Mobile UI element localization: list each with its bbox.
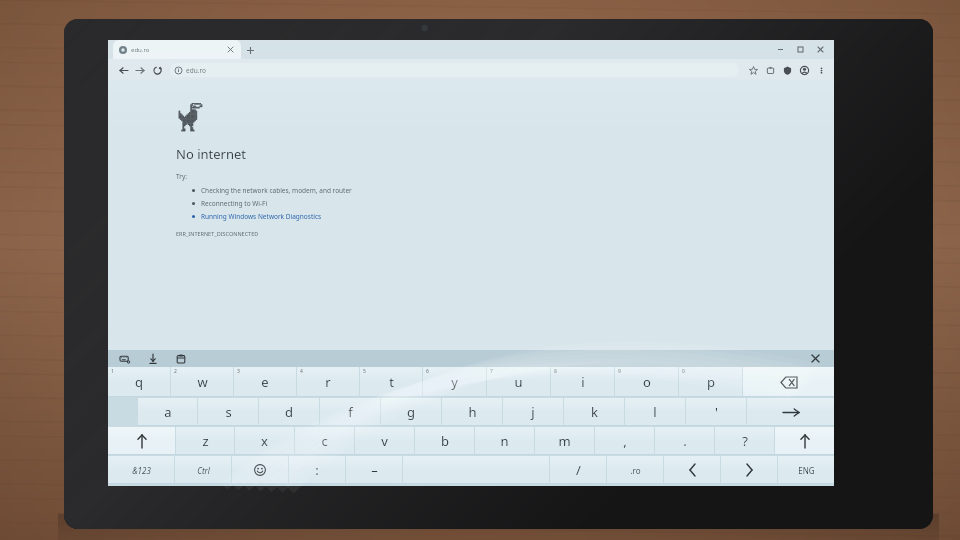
staticText: 0 [682,368,685,375]
button[interactable]: Right [721,456,777,484]
button[interactable]: / [550,456,606,484]
staticText: r [325,373,331,391]
button[interactable]: &123 [108,456,174,484]
staticText: edu.ro [186,66,206,75]
button[interactable]: Keyboard settings [117,351,132,366]
button[interactable]: d [259,398,319,426]
staticText: ERR_INTERNET_DISCONNECTED [176,230,259,237]
staticText: 1 [111,368,114,375]
staticText: / [576,461,581,479]
button[interactable]: Bookmark [745,62,762,79]
button[interactable]: New tab [241,41,259,59]
staticText: z [202,432,209,450]
button[interactable]: Left [664,456,720,484]
button[interactable]: a [138,398,197,426]
staticText: y [451,373,458,391]
button[interactable]: Minimize [770,40,790,59]
staticText: ? [742,432,748,450]
button[interactable]: Running Windows Network Diagnostics [176,212,322,221]
staticText: 9 [618,368,621,375]
button[interactable]: Clipboard [173,351,188,366]
button[interactable]: j [503,398,563,426]
button[interactable]: z [176,427,234,455]
button[interactable]: edu.ro [113,40,241,59]
button[interactable]: ? [715,427,774,455]
button[interactable]: 6 [423,367,486,397]
staticText: n [500,432,509,450]
button[interactable]: Close tab [226,45,235,54]
staticText: 6 [426,368,429,375]
staticText: d [285,403,293,421]
button[interactable]: 5 [360,367,422,397]
staticText: &123 [132,465,151,476]
staticText: : [315,461,319,479]
button[interactable]: Extensions [762,62,779,79]
staticText: , [623,432,627,450]
button[interactable]: h [442,398,502,426]
button[interactable]: Backspace [743,367,834,397]
staticText: Reconnecting to Wi-Fi [201,199,268,208]
button[interactable]: : [289,456,345,484]
button[interactable]: , [595,427,654,455]
button[interactable]: Close keyboard [807,350,824,367]
button[interactable]: k [564,398,624,426]
button[interactable]: Security [779,62,796,79]
button[interactable]: More options [813,62,830,79]
button[interactable]: . [655,427,714,455]
button[interactable]: v [355,427,414,455]
staticText: e [261,373,269,391]
button[interactable]: m [535,427,594,455]
button[interactable]: Enter [747,398,834,426]
button[interactable]: 0 [679,367,742,397]
staticText: edu.ro [131,46,150,54]
button[interactable] [403,456,549,484]
button[interactable]: Maximize [790,40,810,59]
button[interactable]: edu.ro [170,63,739,77]
button[interactable]: f [320,398,380,426]
staticText: t [389,373,394,391]
staticText: g [407,403,415,421]
button[interactable]: Ctrl [175,456,231,484]
button[interactable]: 1 [108,367,170,397]
staticText: k [591,403,598,421]
button[interactable]: – [346,456,402,484]
button[interactable]: Shift [775,427,834,455]
button[interactable]: s [198,398,258,426]
button[interactable]: g [381,398,441,426]
staticText: c [321,432,328,450]
staticText: 4 [300,368,303,375]
button[interactable]: Forward [132,62,149,79]
staticText: 8 [554,368,557,375]
button[interactable]: l [625,398,685,426]
button[interactable]: Close [810,40,830,59]
staticText: j [531,403,535,421]
button[interactable]: 8 [551,367,614,397]
staticText: 3 [237,368,240,375]
staticText: Running Windows Network Diagnostics [201,212,322,221]
button[interactable]: Shift [108,427,175,455]
button[interactable]: Emoji [232,456,288,484]
button[interactable]: c [295,427,354,455]
button[interactable]: n [475,427,534,455]
button[interactable]: Dock keyboard [145,351,160,366]
staticText: .ro [630,465,641,476]
button[interactable]: .ro [607,456,663,484]
button[interactable]: ENG [778,456,834,484]
button[interactable]: b [415,427,474,455]
staticText: u [514,373,523,391]
button[interactable]: 9 [615,367,678,397]
staticText: l [653,403,657,421]
staticText: w [197,373,208,391]
button[interactable]: Reload [149,62,166,79]
button[interactable]: 4 [297,367,359,397]
button[interactable]: 3 [234,367,296,397]
button[interactable]: x [235,427,294,455]
button[interactable]: 2 [171,367,233,397]
staticText: o [643,373,651,391]
button[interactable]: Back [115,62,132,79]
staticText: 2 [174,368,177,375]
button[interactable]: ' [686,398,746,426]
staticText: h [468,403,477,421]
button[interactable]: Profile [796,62,813,79]
button[interactable]: 7 [487,367,550,397]
